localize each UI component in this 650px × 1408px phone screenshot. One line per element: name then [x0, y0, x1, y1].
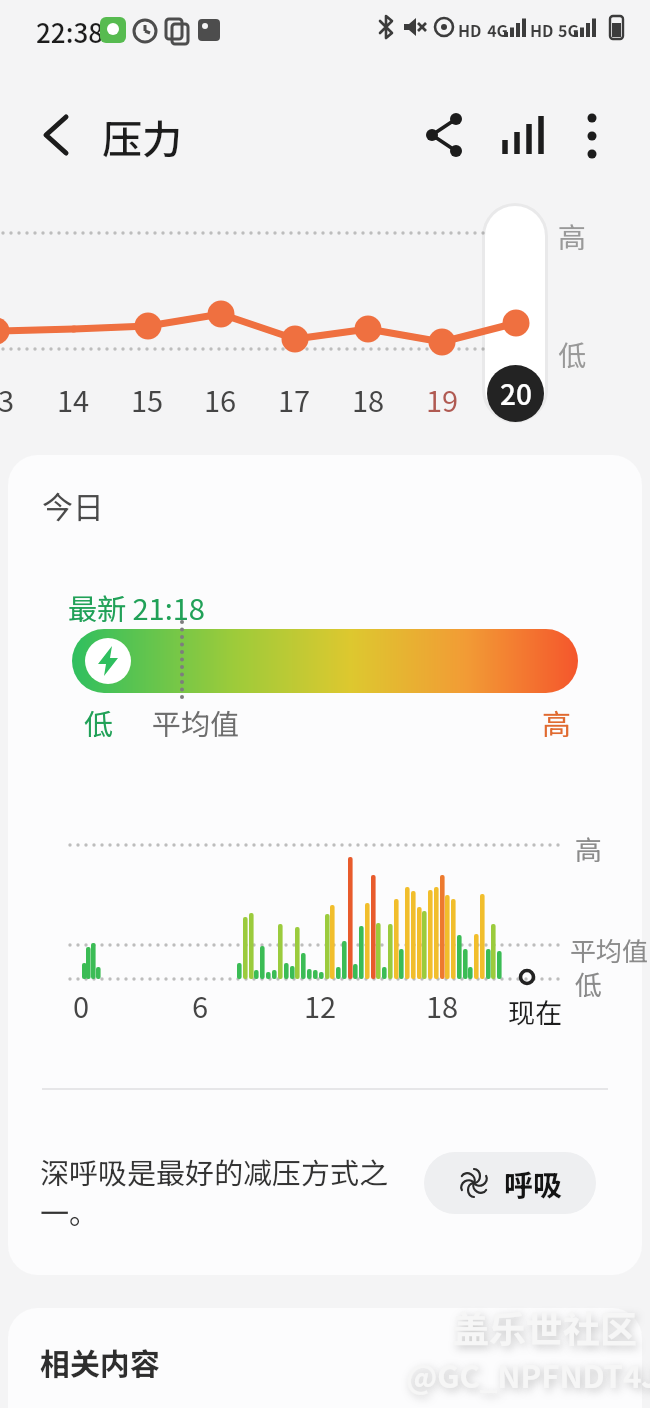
- button[interactable]: [572, 106, 612, 166]
- staticText: 压力: [102, 108, 182, 166]
- staticText: 盖乐世社区: [452, 1300, 637, 1354]
- staticText: 6: [170, 984, 230, 1026]
- staticText: 17: [264, 378, 324, 420]
- staticText: 12: [290, 984, 350, 1026]
- staticText: 16: [190, 378, 250, 420]
- button[interactable]: [496, 106, 550, 164]
- staticText: 低: [575, 964, 602, 1003]
- staticText: 14: [43, 378, 103, 420]
- staticText: 18: [338, 378, 398, 420]
- staticText: 5G: [558, 18, 579, 41]
- staticText: 0: [51, 984, 111, 1026]
- staticText: 平均值: [570, 931, 649, 969]
- button[interactable]: [8, 1308, 642, 1408]
- staticText: 今日: [42, 483, 104, 528]
- staticText: HD: [530, 18, 554, 41]
- staticText: 高: [575, 829, 602, 868]
- button[interactable]: [28, 105, 88, 165]
- staticText: 低: [84, 701, 114, 743]
- staticText: 20: [500, 373, 532, 414]
- staticText: 深呼吸是最好的减压方式之: [40, 1150, 389, 1192]
- staticText: 呼吸: [504, 1162, 563, 1204]
- staticText: 平均值: [152, 701, 240, 743]
- staticText: 最新 21:18: [68, 586, 205, 628]
- staticText: 高: [542, 701, 572, 743]
- staticText: 现在: [508, 992, 562, 1031]
- staticText: @GC_NPFNDT4J: [406, 1352, 650, 1397]
- button[interactable]: 呼吸: [424, 1152, 596, 1214]
- staticText: HD: [458, 18, 482, 41]
- staticText: 15: [117, 378, 177, 420]
- staticText: 一。: [40, 1190, 99, 1232]
- staticText: 18: [412, 984, 472, 1026]
- staticText: 相关内容: [40, 1340, 160, 1383]
- staticText: 22:38: [36, 13, 104, 51]
- staticText: 高: [558, 216, 587, 257]
- staticText: 低: [558, 334, 587, 375]
- staticText: 4G: [487, 18, 508, 41]
- staticText: 13: [0, 378, 28, 420]
- staticText: 19: [412, 378, 472, 420]
- button[interactable]: [418, 108, 472, 162]
